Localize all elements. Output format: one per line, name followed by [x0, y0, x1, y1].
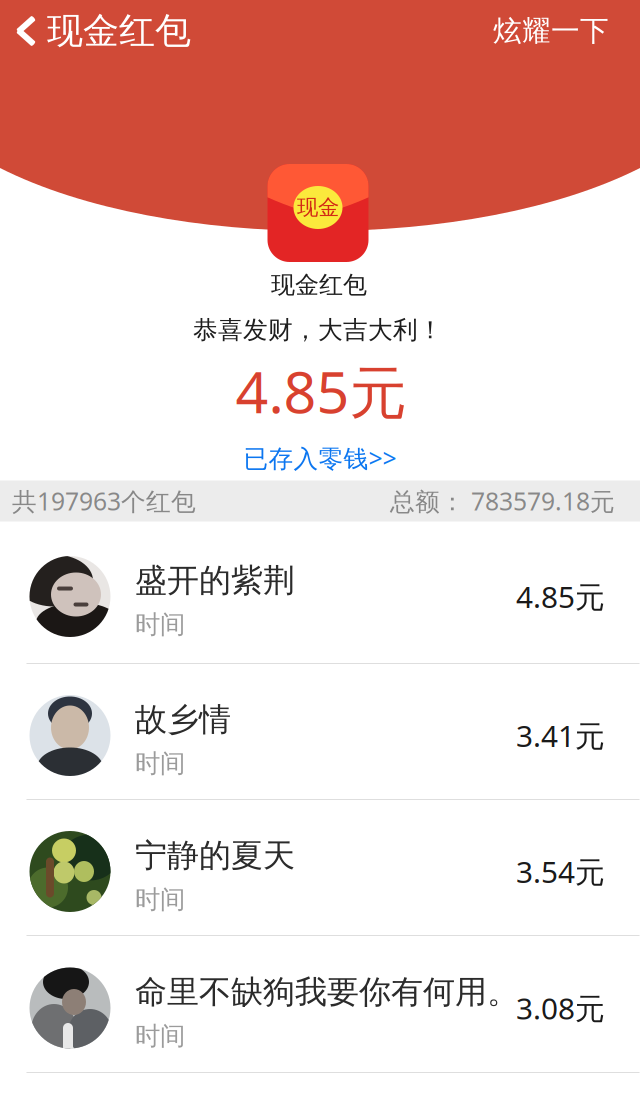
staticText: 命里不缺狗我要你有何用。 [135, 972, 519, 1012]
staticText: 总额： 783579.18元 [390, 484, 615, 518]
staticText: 3.41元 [516, 715, 605, 756]
staticText: 时间 [135, 608, 185, 640]
button[interactable]: 炫耀一下 [471, 0, 631, 63]
button[interactable]: 命里不缺狗我要你有何用。 [0, 0, 640, 1096]
staticText: 4.85元 [235, 352, 406, 430]
staticText: 现金 [297, 194, 339, 221]
staticText: 3.08元 [516, 988, 605, 1028]
staticText: 现金红包 [271, 270, 367, 300]
staticText: 盛开的紫荆 [135, 560, 295, 601]
staticText: 4.85元 [516, 576, 605, 617]
staticText: 已存入零钱>> [243, 441, 396, 475]
staticText: 时间 [135, 1020, 185, 1052]
staticText: 现金红包 [47, 8, 191, 54]
button[interactable]: 宁静的夏天 [0, 0, 640, 1096]
button[interactable]: 现金红包 [0, 0, 207, 63]
button[interactable]: 已存入零钱>> [233, 437, 406, 479]
button[interactable]: 故乡情 [0, 0, 640, 1096]
staticText: 炫耀一下 [493, 13, 609, 49]
staticText: 恭喜发财，大吉大利！ [193, 314, 443, 346]
button[interactable]: 盛开的紫荆 [0, 0, 640, 1096]
staticText: 时间 [135, 883, 185, 915]
staticText: 3.54元 [516, 851, 605, 892]
staticText: 宁静的夏天 [135, 835, 295, 876]
staticText: 共197963个红包 [12, 484, 196, 518]
staticText: 时间 [135, 747, 185, 779]
staticText: 故乡情 [135, 699, 231, 740]
